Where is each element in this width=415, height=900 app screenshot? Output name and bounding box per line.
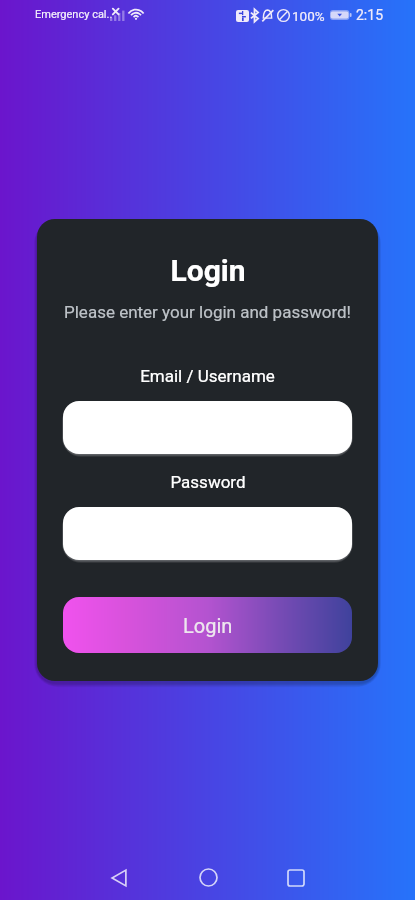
button[interactable]: Recents [252,853,340,900]
button[interactable]: Back [75,853,163,900]
staticText: 100% [292,8,325,24]
staticText: Emergency cal.. [35,8,113,21]
staticText: Email / Username [140,366,275,386]
button[interactable]: Home [164,853,252,900]
button[interactable] [63,401,352,454]
staticText: Please enter your login and password! [64,302,351,322]
button[interactable] [63,507,352,560]
staticText: Login [183,614,233,637]
staticText: Password [170,472,246,492]
staticText: Login [170,253,246,288]
button[interactable]: Login [63,597,352,653]
staticText: 2:15 [356,7,383,23]
